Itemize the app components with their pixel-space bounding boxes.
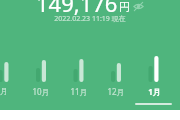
button[interactable]: 10月 xyxy=(26,86,56,102)
staticText: 12月 xyxy=(107,86,125,97)
button[interactable]: 149,176 xyxy=(36,0,144,18)
staticText: 2022.02.23 11:19 現在 xyxy=(54,14,126,24)
button[interactable]: 月 xyxy=(0,86,19,102)
button[interactable]: 残高を隠す xyxy=(133,1,144,12)
staticText: 円 xyxy=(119,0,130,14)
staticText: 149,176 xyxy=(36,0,118,18)
staticText: 月 xyxy=(0,86,8,96)
staticText: 1月 xyxy=(148,86,161,97)
button[interactable]: 11月 xyxy=(64,86,94,102)
staticText: 10月 xyxy=(32,86,50,97)
staticText: 11月 xyxy=(70,86,88,97)
button[interactable]: 12月 xyxy=(101,86,131,102)
button[interactable]: 1月 xyxy=(139,86,169,102)
